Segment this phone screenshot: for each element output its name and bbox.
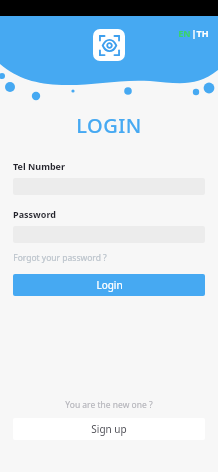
button[interactable]: Login	[13, 274, 205, 296]
staticText: Forgot your password ?	[13, 252, 107, 264]
staticText: EN	[178, 27, 191, 39]
other: Scan eye logo	[93, 29, 125, 61]
staticText: |TH	[191, 27, 209, 39]
staticText: Tel Number	[13, 160, 65, 172]
button[interactable]: Forgot your password ?	[13, 252, 107, 264]
staticText: Login	[96, 278, 123, 292]
staticText: Password	[13, 208, 56, 220]
staticText: LOGIN	[76, 112, 142, 139]
staticText: You are the new one ?	[65, 399, 153, 411]
staticText: Sign up	[91, 422, 127, 436]
button[interactable]: EN	[176, 25, 211, 41]
button[interactable]: Sign up	[13, 418, 205, 440]
